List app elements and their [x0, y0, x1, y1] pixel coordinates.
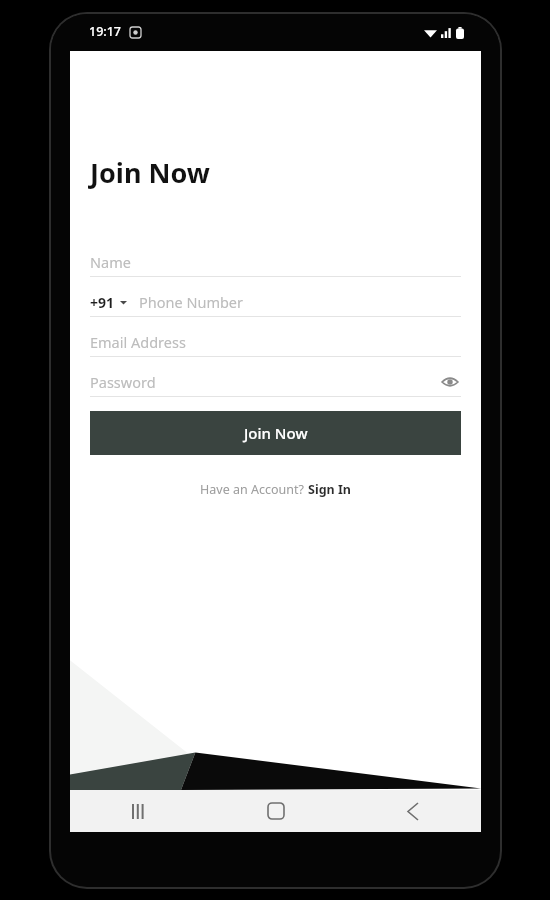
button[interactable]: Show password	[439, 371, 461, 393]
button[interactable]: Sign In	[308, 481, 351, 498]
button[interactable]: Recent apps	[70, 790, 207, 832]
staticText: Phone Number	[139, 292, 244, 312]
staticText: Password	[90, 372, 439, 392]
staticText: 19:17	[89, 23, 122, 40]
button[interactable]: Home	[207, 790, 344, 832]
button[interactable]: Name	[90, 248, 461, 277]
button[interactable]: +91	[90, 288, 461, 317]
staticText: +91	[90, 293, 115, 312]
staticText: Join Now	[244, 423, 308, 443]
staticText: Sign In	[308, 481, 351, 498]
button[interactable]: Join Now	[90, 411, 461, 455]
staticText: Join Now	[90, 154, 210, 191]
staticText: Have an Account?	[200, 481, 308, 498]
staticText: Name	[90, 252, 461, 272]
button[interactable]: Back	[344, 790, 481, 832]
button[interactable]: Email Address	[90, 328, 461, 357]
button[interactable]: Password	[90, 368, 461, 397]
staticText: Email Address	[90, 332, 461, 352]
